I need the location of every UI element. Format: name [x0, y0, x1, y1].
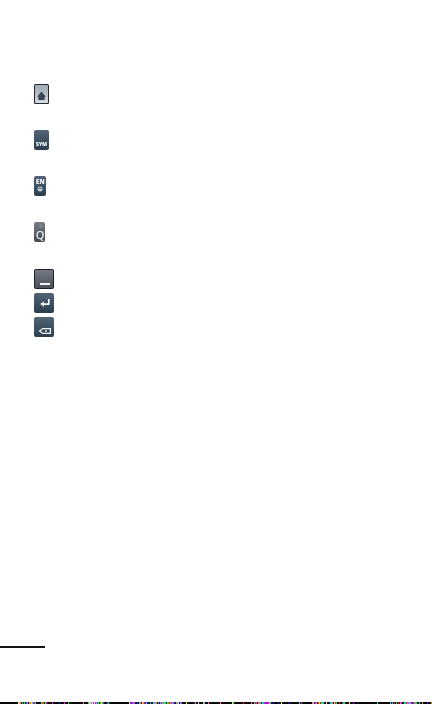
button[interactable]: Change language — [34, 176, 46, 196]
button[interactable]: Q — [34, 222, 45, 242]
button[interactable]: Enter — [34, 293, 54, 313]
button[interactable]: Symbols — [34, 130, 49, 150]
staticText: Q — [36, 228, 45, 242]
staticText: % — [39, 223, 44, 230]
button[interactable]: Space — [34, 269, 54, 289]
staticText: SYM — [36, 141, 48, 148]
button[interactable]: Shift — [34, 84, 49, 104]
button[interactable]: Backspace — [34, 317, 54, 337]
staticText: EN — [36, 177, 45, 186]
